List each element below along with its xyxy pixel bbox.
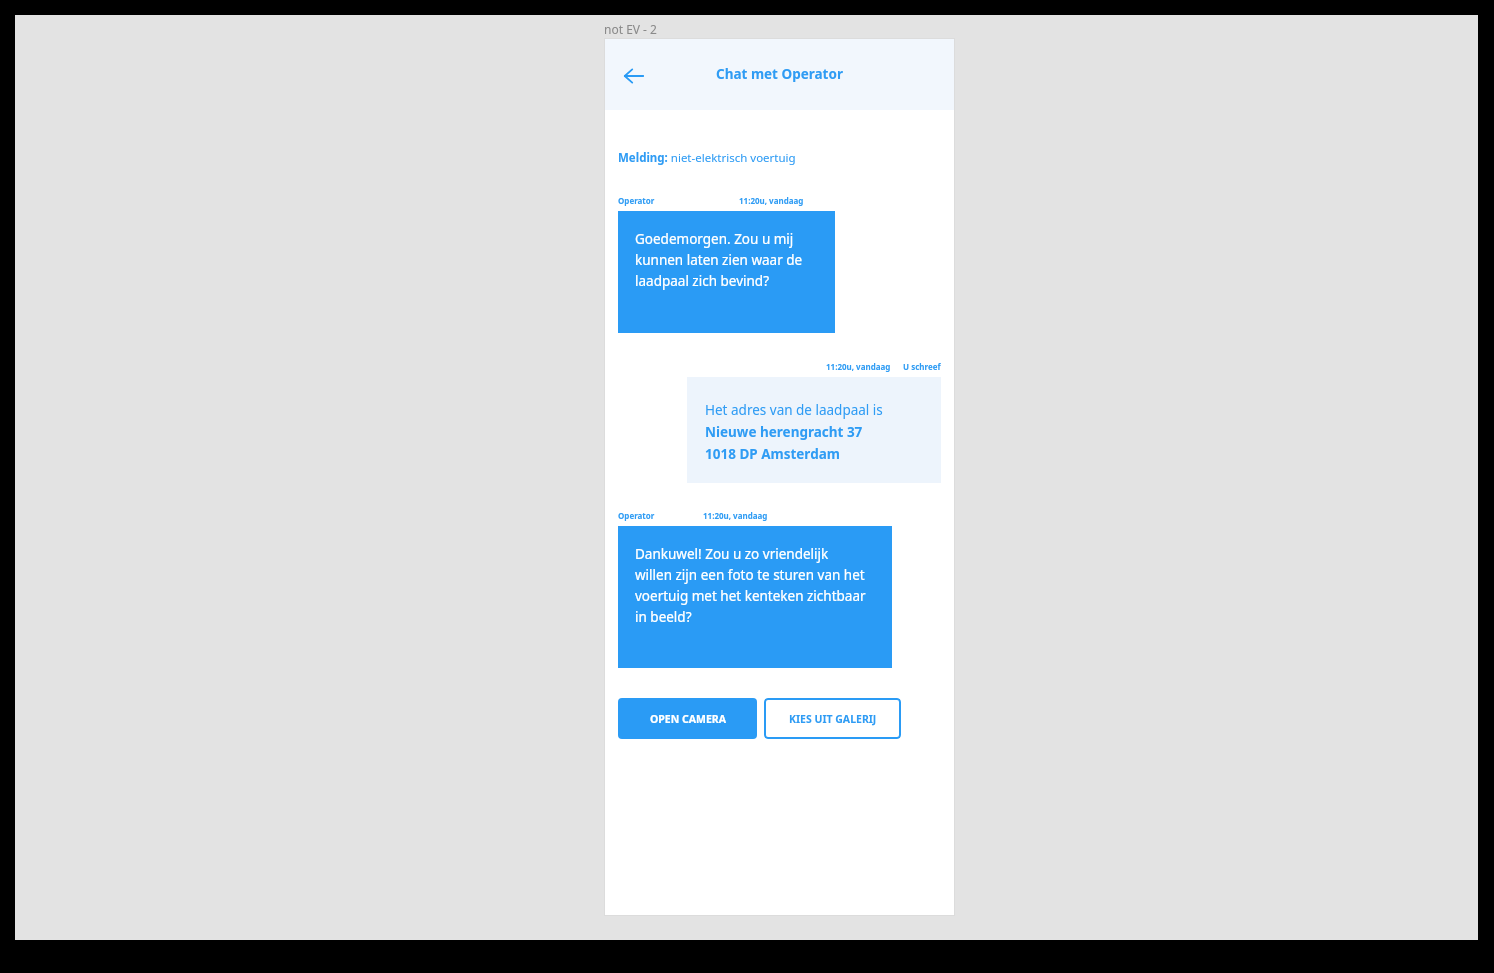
- staticText: 11:20u, vandaag: [703, 510, 768, 521]
- staticText: Het adres van de laadpaal is Nieuwe here…: [705, 401, 883, 463]
- button[interactable]: OPEN CAMERA: [618, 698, 757, 739]
- staticText: Dankuwel! Zou u zo vriendelijk willen zi…: [635, 545, 866, 626]
- staticText: Operator: [618, 195, 655, 206]
- staticText: 11:20u, vandaag: [826, 361, 891, 372]
- button[interactable]: Goedemorgen. Zou u mij kunnen laten zien…: [618, 211, 835, 333]
- staticText: OPEN CAMERA: [650, 712, 726, 726]
- staticText: 11:20u, vandaag: [739, 195, 804, 206]
- button[interactable]: Dankuwel! Zou u zo vriendelijk willen zi…: [618, 526, 892, 668]
- staticText: Melding: niet-elektrisch voertuig: [618, 150, 796, 166]
- staticText: U schreef: [903, 361, 941, 372]
- staticText: Goedemorgen. Zou u mij kunnen laten zien…: [635, 230, 803, 290]
- button[interactable]: Het adres van de laadpaal is Nieuwe here…: [687, 377, 941, 483]
- staticText: Operator: [618, 510, 655, 521]
- button[interactable]: KIES UIT GALERIJ: [764, 698, 901, 739]
- staticText: Chat met Operator: [716, 65, 843, 83]
- staticText: KIES UIT GALERIJ: [789, 712, 877, 726]
- staticText: not EV - 2: [604, 21, 657, 37]
- button[interactable]: Back: [618, 60, 650, 92]
